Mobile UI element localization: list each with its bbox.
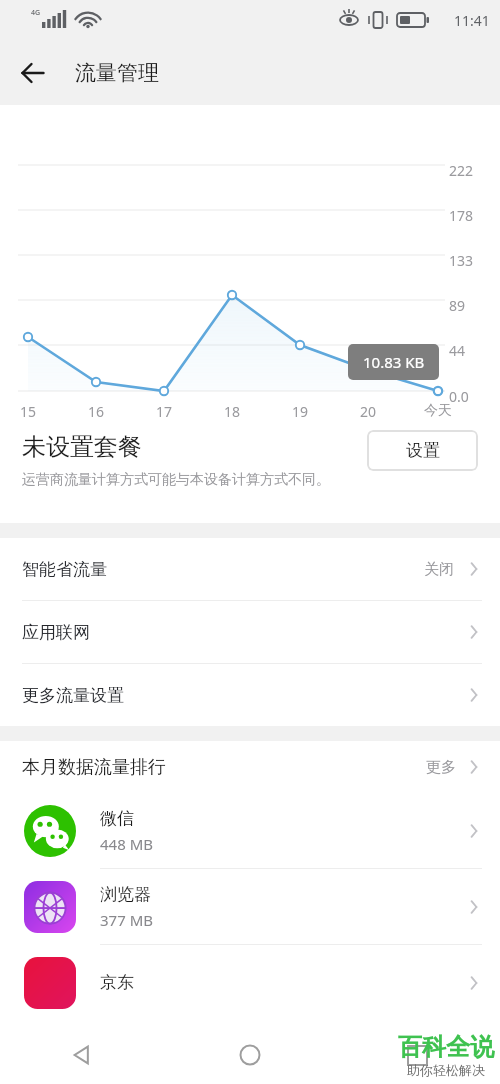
staticText: 20 [352,402,384,421]
staticText: 377 MB [100,910,153,930]
staticText: 设置 [406,440,440,461]
staticText: 本月数据流量排行 [22,756,166,779]
staticText: 微信 [100,808,134,829]
staticText: 15 [12,402,44,421]
staticText: 89 [449,296,466,315]
staticText: 16 [80,402,112,421]
staticText: 17 [148,402,180,421]
staticText: 44 [449,341,466,360]
button[interactable]: 应用联网 [0,601,500,664]
staticText: 133 [449,251,474,270]
staticText: 助你轻松解决 [407,1062,485,1078]
button[interactable]: 设置 [367,430,478,471]
button[interactable]: Back [10,50,56,96]
staticText: 浏览器 [100,884,151,905]
button[interactable]: 京东 [0,945,500,1020]
staticText: 更多流量设置 [22,685,464,706]
staticText: 智能省流量 [22,559,424,580]
staticText: 未设置套餐 [22,432,142,462]
button[interactable]: Back [59,1031,107,1079]
staticText: 4G [31,8,41,18]
staticText: 222 [449,161,474,180]
staticText: 京东 [100,972,134,993]
staticText: 0.0 [449,387,469,406]
staticText: 更多 [426,758,456,777]
staticText: 运营商流量计算方式可能与本设备计算方式不同。 [22,471,330,489]
button[interactable]: 智能省流量 [0,538,500,601]
staticText: 今天 [422,402,454,420]
staticText: 百科全说 [398,1032,494,1062]
button[interactable]: 更多流量设置 [0,664,500,726]
staticText: 448 MB [100,834,153,854]
staticText: 11:41 [454,11,490,30]
staticText: 流量管理 [75,60,159,86]
staticText: 应用联网 [22,622,464,643]
staticText: 18 [216,402,248,421]
button[interactable]: 本月数据流量排行 [0,741,500,793]
staticText: 19 [284,402,316,421]
staticText: 关闭 [424,560,454,579]
button[interactable]: 微信 [0,793,500,868]
staticText: 178 [449,206,474,225]
staticText: 10.83 KB [363,352,425,372]
button[interactable]: Recents [393,1031,441,1079]
button[interactable]: Home [226,1031,274,1079]
button[interactable]: 浏览器 [0,869,500,944]
